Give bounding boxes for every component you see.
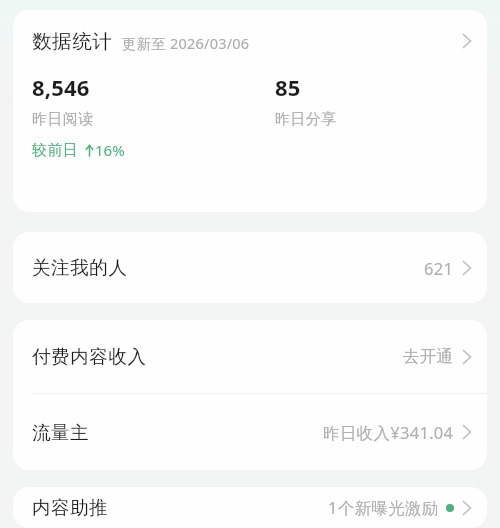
staticText: 昨日阅读	[32, 110, 94, 129]
staticText: 昨日收入¥341.04	[323, 421, 454, 444]
staticText: 内容助推	[32, 496, 109, 519]
staticText: 数据统计	[32, 29, 112, 54]
staticText: 1个新曝光激励	[328, 496, 439, 519]
staticText: 去开通	[403, 346, 454, 367]
staticText: 付费内容收入	[32, 345, 147, 368]
button[interactable]: 流量主	[13, 394, 487, 470]
staticText: 流量主	[32, 421, 90, 444]
button[interactable]: 付费内容收入	[13, 320, 487, 393]
staticText: 较前日	[32, 141, 79, 160]
staticText: 关注我的人	[32, 256, 128, 279]
button[interactable]: 内容助推	[13, 487, 487, 528]
staticText: 85	[275, 72, 301, 102]
staticText: 621	[424, 257, 454, 279]
staticText: 昨日分享	[275, 110, 337, 129]
staticText: 更新至 2026/03/06	[122, 33, 250, 53]
staticText: 8,546	[32, 72, 90, 102]
staticText: 16%	[95, 140, 125, 160]
button[interactable]: 关注我的人	[13, 232, 487, 303]
button[interactable]: 数据统计	[13, 10, 487, 212]
